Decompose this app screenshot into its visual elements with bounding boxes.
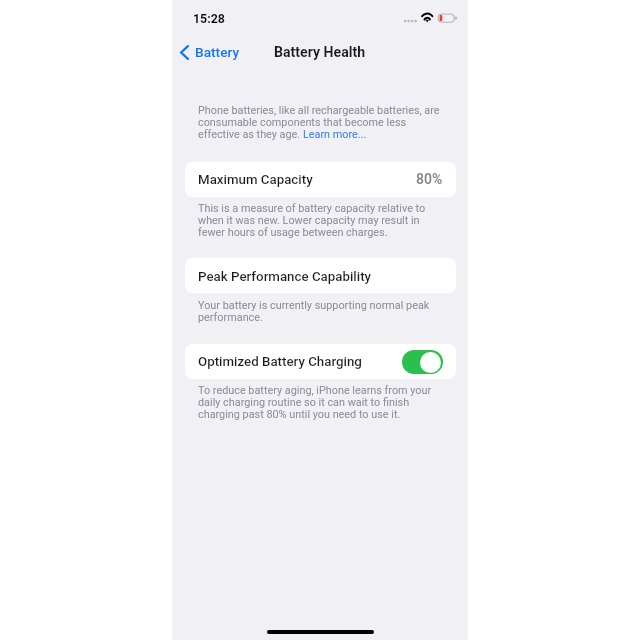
- button[interactable]: Battery: [180, 40, 260, 64]
- button[interactable]: Optimized Battery Charging toggle: [402, 350, 443, 374]
- staticText: 15:28: [193, 11, 225, 26]
- button[interactable]: Maximum Capacity: [185, 162, 456, 197]
- staticText: Optimized Battery Charging: [198, 353, 362, 369]
- staticText: This is a measure of battery capacity re…: [198, 202, 446, 238]
- staticText: Peak Performance Capability: [198, 268, 372, 284]
- staticText: Phone batteries, like all rechargeable b…: [198, 104, 446, 140]
- button[interactable]: Peak Performance Capability: [185, 258, 456, 293]
- staticText: Battery Health: [274, 44, 366, 61]
- staticText: To reduce battery aging, iPhone learns f…: [198, 384, 446, 420]
- staticText: Battery: [195, 44, 240, 60]
- staticText: Your battery is currently supporting nor…: [198, 299, 446, 323]
- staticText: Maximum Capacity: [198, 171, 313, 187]
- button[interactable]: Optimized Battery Charging: [185, 344, 456, 379]
- staticText: 80%: [416, 171, 443, 187]
